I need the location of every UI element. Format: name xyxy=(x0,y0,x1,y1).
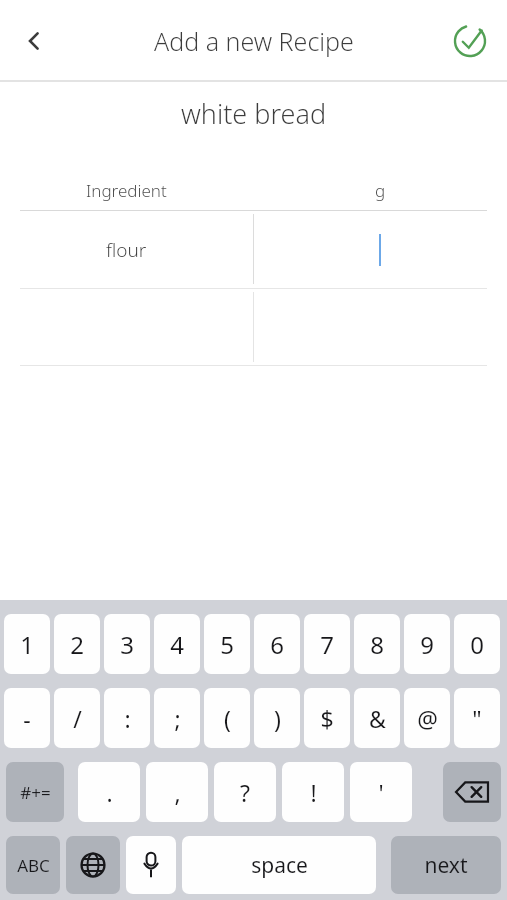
button[interactable]: ! xyxy=(282,762,344,822)
staticText: & xyxy=(369,703,386,734)
button[interactable]: space xyxy=(182,836,376,894)
button[interactable]: Change keyboard xyxy=(66,836,120,894)
button[interactable]: ? xyxy=(214,762,276,822)
staticText: 8 xyxy=(370,628,384,661)
button[interactable]: 5 xyxy=(204,614,250,674)
button[interactable] xyxy=(253,211,507,288)
button[interactable]: ; xyxy=(154,688,200,748)
button[interactable]: / xyxy=(54,688,100,748)
staticText: ! xyxy=(310,777,317,808)
button[interactable]: " xyxy=(454,688,500,748)
staticText: space xyxy=(251,851,308,880)
staticText: 6 xyxy=(270,628,284,661)
button[interactable]: Backspace xyxy=(443,762,501,822)
button[interactable]: $ xyxy=(304,688,350,748)
button[interactable]: 3 xyxy=(104,614,150,674)
staticText: 9 xyxy=(420,628,434,661)
button[interactable]: : xyxy=(104,688,150,748)
staticText: ; xyxy=(174,703,181,734)
button[interactable]: 9 xyxy=(404,614,450,674)
button[interactable]: #+= xyxy=(6,762,64,822)
staticText: ABC xyxy=(17,854,50,877)
staticText: 4 xyxy=(170,628,184,661)
staticText: , xyxy=(174,777,181,808)
button[interactable]: . xyxy=(78,762,140,822)
staticText: flour xyxy=(106,237,147,263)
button[interactable]: & xyxy=(354,688,400,748)
button[interactable]: ' xyxy=(350,762,412,822)
staticText: 5 xyxy=(220,628,234,661)
staticText: #+= xyxy=(20,781,51,804)
staticText: 3 xyxy=(120,628,134,661)
button[interactable]: 4 xyxy=(154,614,200,674)
button[interactable]: Voice input xyxy=(126,836,176,894)
staticText: ( xyxy=(224,703,231,734)
button[interactable]: @ xyxy=(404,688,450,748)
staticText: / xyxy=(73,703,82,734)
button[interactable]: 7 xyxy=(304,614,350,674)
staticText: ' xyxy=(378,777,384,808)
button[interactable]: 6 xyxy=(254,614,300,674)
staticText: . xyxy=(106,777,113,808)
button[interactable]: Back xyxy=(8,15,60,67)
staticText: : xyxy=(124,703,131,734)
staticText: white bread xyxy=(181,95,327,132)
button[interactable]: flour xyxy=(0,211,253,288)
staticText: 7 xyxy=(320,628,334,661)
button[interactable]: ABC xyxy=(6,836,60,894)
button[interactable]: Save recipe xyxy=(445,16,495,66)
staticText: 1 xyxy=(20,628,34,661)
button[interactable]: , xyxy=(146,762,208,822)
button[interactable]: ( xyxy=(204,688,250,748)
staticText: ) xyxy=(274,703,281,734)
staticText: Ingredient xyxy=(86,179,167,202)
button[interactable]: 2 xyxy=(54,614,100,674)
button[interactable]: ) xyxy=(254,688,300,748)
staticText: @ xyxy=(417,703,438,734)
staticText: Add a new Recipe xyxy=(154,24,354,58)
staticText: 2 xyxy=(70,628,84,661)
staticText: " xyxy=(472,703,482,734)
staticText: ? xyxy=(240,777,250,808)
staticText: - xyxy=(23,703,31,734)
staticText: g xyxy=(375,179,386,202)
button[interactable]: - xyxy=(4,688,50,748)
staticText: $ xyxy=(320,703,334,734)
button[interactable]: 0 xyxy=(454,614,500,674)
staticText: 0 xyxy=(470,628,484,661)
button[interactable]: next xyxy=(391,836,501,894)
staticText: next xyxy=(424,851,468,880)
button[interactable]: 8 xyxy=(354,614,400,674)
button[interactable]: 1 xyxy=(4,614,50,674)
